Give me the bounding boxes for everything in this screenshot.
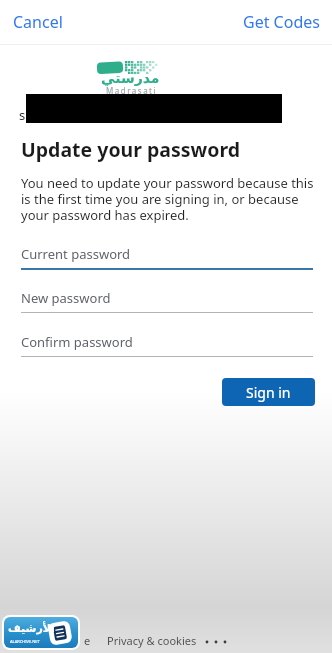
staticText: s <box>19 106 26 124</box>
button[interactable]: Cancel <box>0 11 63 33</box>
button[interactable]: Current password <box>21 245 313 270</box>
staticText: New password <box>21 289 111 307</box>
staticText: You need to update your password because… <box>21 174 314 223</box>
staticText: Madrasati <box>106 85 158 96</box>
button[interactable]: Confirm password <box>21 333 313 357</box>
button[interactable]: الأرشيف <box>4 617 78 648</box>
staticText: Confirm password <box>21 333 133 351</box>
button[interactable]: Get Codes <box>243 11 332 33</box>
staticText: Sign in <box>246 383 291 402</box>
button[interactable]: Sign in <box>222 378 315 406</box>
button[interactable]: New password <box>21 289 313 313</box>
staticText: ALARCHIVE.NET <box>10 639 40 644</box>
staticText: e <box>84 633 91 648</box>
staticText: الأرشيف <box>8 622 55 635</box>
staticText: Current password <box>21 245 131 263</box>
staticText: Update your password <box>21 136 241 163</box>
button[interactable] <box>204 639 230 645</box>
staticText: مدرستي <box>101 70 160 86</box>
button[interactable]: Privacy & cookies <box>107 633 197 648</box>
